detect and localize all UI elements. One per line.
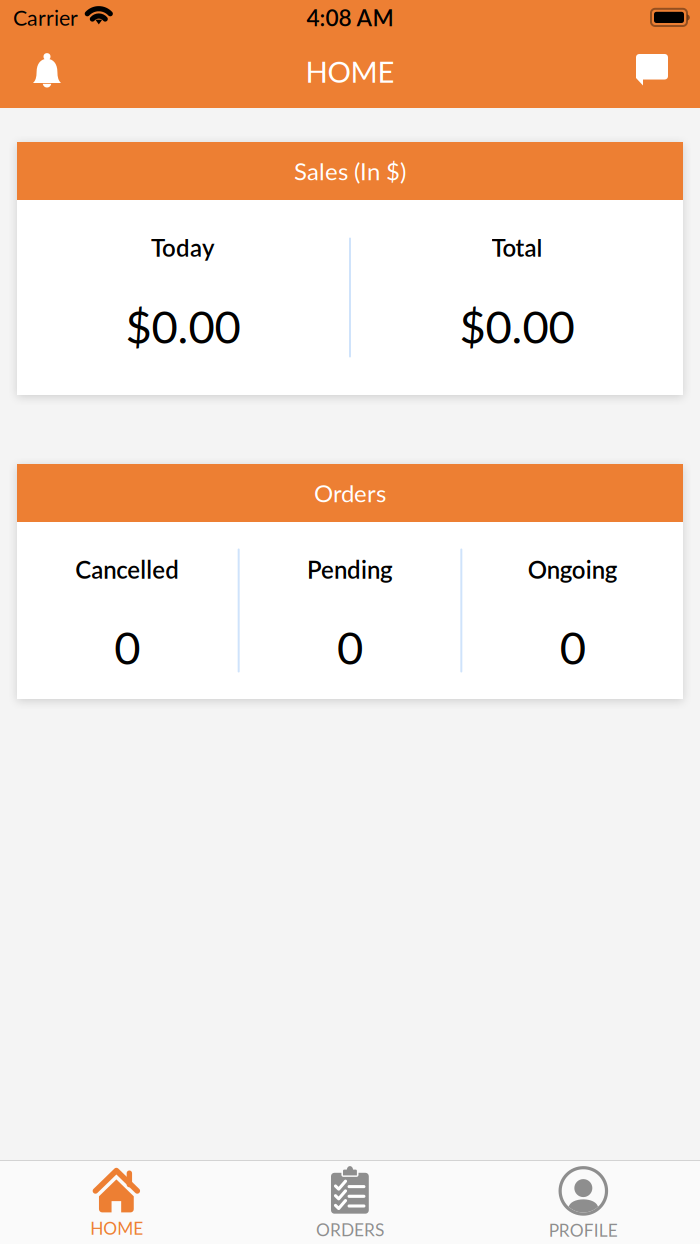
button[interactable]: HOME xyxy=(0,1160,233,1244)
button[interactable]: Messages xyxy=(619,35,685,108)
staticText: 0 xyxy=(560,620,586,674)
staticText: ORDERS xyxy=(316,1219,384,1240)
staticText: 0 xyxy=(114,620,140,674)
staticText: Total xyxy=(491,233,542,262)
staticText: Pending xyxy=(307,555,393,584)
staticText: 0 xyxy=(337,620,363,674)
staticText: HOME xyxy=(90,1218,143,1238)
button[interactable]: PROFILE xyxy=(467,1160,700,1244)
staticText: Carrier xyxy=(13,5,78,30)
staticText: 4:08 AM xyxy=(306,4,393,31)
staticText: Ongoing xyxy=(528,555,618,584)
staticText: Cancelled xyxy=(75,555,179,584)
staticText: Today xyxy=(151,233,215,262)
staticText: HOME xyxy=(305,54,394,89)
staticText: Orders xyxy=(314,479,386,507)
button[interactable]: ORDERS xyxy=(233,1160,467,1244)
staticText: $0.00 xyxy=(459,299,574,353)
staticText: $0.00 xyxy=(125,299,240,353)
button[interactable]: Notifications xyxy=(14,35,80,108)
staticText: PROFILE xyxy=(549,1220,618,1240)
staticText: Sales (In $) xyxy=(294,157,406,185)
